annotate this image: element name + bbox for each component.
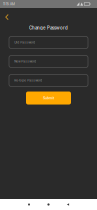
staticText: Change Password xyxy=(29,25,68,30)
button[interactable]: Back xyxy=(0,8,14,22)
button[interactable]: Home xyxy=(39,199,58,210)
button[interactable]: Recents xyxy=(19,199,39,210)
staticText: Submit xyxy=(43,96,54,100)
button[interactable]: Submit xyxy=(26,91,71,104)
staticText: Old Password xyxy=(14,41,35,44)
staticText: Re-type Password xyxy=(14,79,42,82)
staticText: New Password xyxy=(14,60,36,63)
staticText: 11:15 AM xyxy=(3,2,15,6)
button[interactable]: Back xyxy=(58,199,78,210)
